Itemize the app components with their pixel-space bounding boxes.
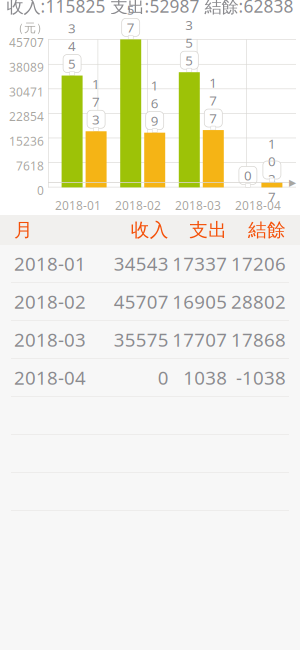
staticText: 45707 — [9, 34, 44, 50]
staticText: 16905 — [172, 289, 227, 314]
staticText: 2018-04 — [14, 365, 86, 390]
button[interactable]: 2018-04 — [0, 359, 300, 397]
staticText: 17707 — [172, 327, 227, 352]
staticText: 30471 — [9, 84, 44, 100]
staticText: 38089 — [9, 59, 44, 75]
staticText: ▶ — [289, 177, 296, 188]
staticText: 2018-01 — [14, 251, 86, 276]
staticText: 結餘 — [248, 218, 286, 241]
staticText: 2018-03 — [175, 197, 221, 213]
staticText: 1038 — [183, 365, 227, 390]
staticText: 17336 — [92, 75, 100, 163]
staticText: 0 — [244, 166, 252, 184]
staticText: 月 — [14, 218, 33, 241]
button[interactable]: 2018-02 — [0, 283, 300, 321]
staticText: 17337 — [172, 251, 227, 276]
staticText: 7618 — [16, 158, 44, 174]
button[interactable]: 2018-01 — [0, 245, 300, 283]
button[interactable]: 2018-03 — [0, 321, 300, 359]
staticText: 2018-01 — [55, 197, 101, 213]
staticText: 45707 — [127, 0, 135, 72]
staticText: 收入 — [131, 218, 169, 241]
staticText: 2018-04 — [235, 197, 281, 213]
staticText: 35575 — [114, 327, 169, 352]
staticText: 22854 — [9, 108, 44, 124]
staticText: -1038 — [236, 365, 286, 390]
staticText: 2018-02 — [115, 197, 161, 213]
staticText: 支出 — [189, 218, 227, 241]
staticText: 17868 — [231, 327, 286, 352]
staticText: （元） — [12, 21, 48, 35]
staticText: 2018-03 — [14, 327, 86, 352]
staticText: 1037 — [268, 135, 276, 205]
staticText: 0 — [158, 365, 169, 390]
staticText: 0 — [37, 182, 44, 198]
staticText: 28802 — [231, 289, 286, 314]
staticText: 2018-02 — [14, 289, 86, 314]
staticText: 45707 — [114, 289, 169, 314]
staticText: 收入:115825 支出:52987 結餘:62838 — [6, 0, 293, 17]
staticText: 34543 — [68, 19, 76, 108]
staticText: 34543 — [114, 251, 169, 276]
staticText: 15236 — [9, 133, 44, 149]
staticText: 17206 — [231, 251, 286, 276]
staticText: 35575 — [185, 16, 193, 104]
staticText: 16905 — [151, 76, 159, 165]
staticText: 17707 — [209, 74, 217, 162]
